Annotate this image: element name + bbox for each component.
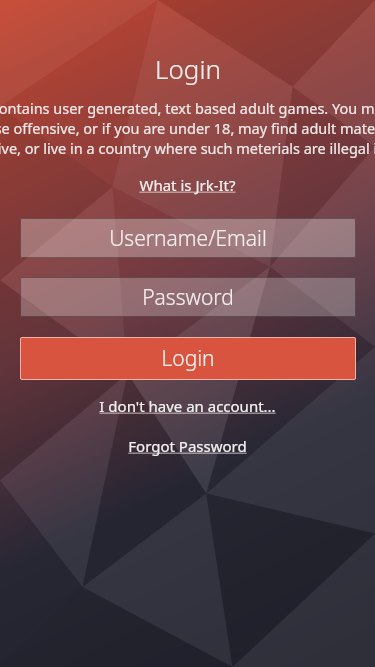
staticText: I don't have an account... [99, 396, 276, 416]
button[interactable]: I don't have an account... [89, 393, 286, 419]
staticText: Login [155, 51, 221, 86]
button[interactable]: Login [20, 337, 356, 380]
staticText: Login [161, 344, 215, 373]
button[interactable]: Password [20, 277, 356, 317]
button[interactable]: Forgot Password [118, 433, 257, 459]
button[interactable]: Username/Email [20, 218, 356, 258]
button[interactable]: What is Jrk-It? [129, 172, 246, 198]
staticText: What is Jrk-It? [139, 175, 236, 195]
staticText: Forgot Password [128, 436, 247, 456]
staticText: Password [142, 283, 234, 312]
staticText: Username/Email [109, 224, 267, 253]
staticText: Jrk-It contains user generated, text bas… [0, 98, 375, 158]
